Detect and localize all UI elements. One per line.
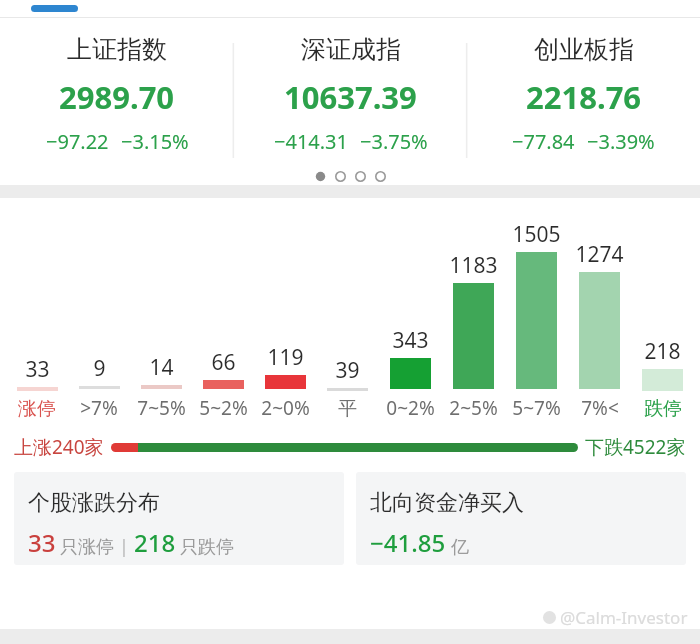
staticText: −41.85 xyxy=(370,526,446,559)
button[interactable]: 创业板指 xyxy=(467,18,700,167)
staticText: 33 xyxy=(28,526,56,559)
staticText: 只跌停 xyxy=(180,536,234,559)
staticText: 北向资金净买入 xyxy=(370,489,524,517)
staticText: 2218.76 xyxy=(526,76,642,118)
staticText: 2989.70 xyxy=(59,76,175,118)
staticText: −77.84 xyxy=(512,128,575,155)
staticText: 343 xyxy=(392,326,429,355)
staticText: 上涨240家 xyxy=(14,434,104,460)
button[interactable]: 66 xyxy=(192,198,254,429)
button[interactable]: 218 xyxy=(631,198,694,429)
button[interactable]: 上证指数 xyxy=(0,18,234,167)
staticText: 创业板指 xyxy=(534,34,634,65)
staticText: 119 xyxy=(267,343,304,372)
staticText: 218 xyxy=(134,526,176,559)
staticText: 218 xyxy=(644,337,681,366)
button[interactable]: 9 xyxy=(68,198,130,429)
staticText: −97.22 xyxy=(46,128,109,155)
staticText: 14 xyxy=(149,353,174,382)
staticText: 平 xyxy=(338,397,357,421)
staticText: 1505 xyxy=(512,220,561,249)
staticText: @Calm-Investor xyxy=(560,606,688,629)
button[interactable]: 343 xyxy=(379,198,442,429)
staticText: −414.31 xyxy=(274,128,348,155)
staticText: −3.75% xyxy=(360,128,428,155)
staticText: 33 xyxy=(25,355,50,384)
button[interactable]: 1183 xyxy=(442,198,505,429)
staticText: >7% xyxy=(80,395,118,421)
staticText: 10637.39 xyxy=(284,76,417,118)
staticText: 亿 xyxy=(451,536,469,559)
staticText: 7~5% xyxy=(137,395,186,421)
button[interactable]: 33 xyxy=(6,198,68,429)
button[interactable] xyxy=(111,443,578,452)
staticText: −3.15% xyxy=(121,128,189,155)
button[interactable]: 北向资金净买入 xyxy=(356,472,686,565)
button[interactable]: 14 xyxy=(130,198,192,429)
staticText: 只涨停 xyxy=(60,536,114,559)
staticText: 9 xyxy=(93,354,106,383)
button[interactable]: 1274 xyxy=(568,198,631,429)
staticText: −3.39% xyxy=(587,128,655,155)
staticText: | xyxy=(119,534,129,559)
staticText: 39 xyxy=(335,356,360,385)
staticText: 0~2% xyxy=(386,395,435,421)
staticText: 66 xyxy=(211,348,236,377)
staticText: 1183 xyxy=(449,251,498,280)
staticText: 5~2% xyxy=(199,395,248,421)
staticText: 下跌4522家 xyxy=(585,434,686,460)
button[interactable]: 1505 xyxy=(505,198,568,429)
button[interactable]: 39 xyxy=(316,198,379,429)
button[interactable]: 深证成指 xyxy=(234,18,467,167)
staticText: 1274 xyxy=(575,240,624,269)
staticText: 2~0% xyxy=(261,395,310,421)
button[interactable]: 119 xyxy=(254,198,316,429)
staticText: 上证指数 xyxy=(67,34,167,65)
staticText: 深证成指 xyxy=(301,34,401,65)
staticText: 个股涨跌分布 xyxy=(28,489,160,517)
staticText: 涨停 xyxy=(18,397,56,421)
button[interactable]: 个股涨跌分布 xyxy=(14,472,344,565)
staticText: 2~5% xyxy=(449,395,498,421)
staticText: 5~7% xyxy=(512,395,561,421)
staticText: 跌停 xyxy=(644,397,682,421)
staticText: 7%< xyxy=(581,395,619,421)
